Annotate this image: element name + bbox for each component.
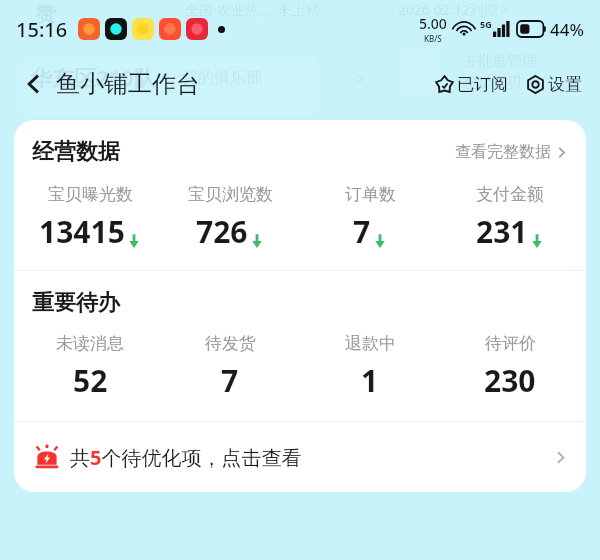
staticText: 15:16 — [16, 16, 68, 43]
button[interactable]: 订单数 — [300, 182, 440, 254]
staticText: 230 — [484, 360, 536, 401]
staticText: 726 — [196, 211, 248, 252]
button[interactable]: 返回 — [14, 64, 54, 104]
staticText: 7 — [353, 211, 371, 252]
button[interactable]: 宝贝浏览数 — [160, 182, 300, 254]
staticText: 设置 — [548, 74, 582, 95]
staticText: 我的俱乐部 — [182, 68, 262, 88]
staticText: KB/S — [424, 33, 442, 44]
staticText: 宝贝曝光数 — [48, 184, 133, 205]
button[interactable]: 宝贝曝光数 — [20, 182, 160, 254]
button[interactable]: 退款中 — [300, 331, 440, 403]
staticText: 支付金额 — [476, 184, 544, 205]
button[interactable]: 查看完整数据 — [453, 138, 570, 166]
button[interactable]: 共5个待优化项，点击查看 — [14, 422, 586, 492]
staticText: 全国·农业热... ·未上榜 — [185, 0, 320, 19]
staticText: 查看完整数据 — [455, 142, 551, 162]
staticText: 退款中 — [345, 333, 396, 354]
staticText: 1 — [361, 360, 379, 401]
button[interactable]: 支付金额 — [440, 182, 580, 254]
staticText: 231 — [476, 211, 528, 252]
staticText: 在卖宝贝 — [462, 74, 522, 93]
staticText: 未读消息 — [56, 333, 124, 354]
button[interactable]: 已订阅 — [433, 70, 510, 99]
staticText: 重要待办 — [32, 289, 120, 317]
staticText: 赞 — [36, 2, 56, 27]
staticText: 44% — [550, 18, 584, 41]
button[interactable]: 待评价 — [440, 331, 580, 403]
button[interactable]: 设置 — [524, 70, 584, 99]
staticText: 经营数据 — [32, 138, 120, 166]
staticText: 2026.02.12到期 > — [398, 0, 510, 19]
staticText: 华东区210队 — [30, 62, 156, 92]
button[interactable]: 未读消息 — [20, 331, 160, 403]
staticText: 52 — [73, 360, 108, 401]
staticText: 订单数 — [345, 184, 396, 205]
staticText: 5.00 — [419, 14, 447, 33]
staticText: 共5个待优化项，点击查看 — [70, 444, 302, 471]
staticText: 5G — [480, 18, 492, 30]
staticText: 已订阅 — [457, 74, 508, 95]
button[interactable]: 待发货 — [160, 331, 300, 403]
staticText: 鱼小铺工作台 — [56, 69, 200, 99]
staticText: 待发货 — [205, 333, 256, 354]
staticText: 去批量管理 — [462, 52, 537, 71]
staticText: 宝贝浏览数 — [188, 184, 273, 205]
staticText: 13415 — [39, 211, 125, 252]
staticText: 待评价 — [485, 333, 536, 354]
staticText: 7 — [221, 360, 239, 401]
